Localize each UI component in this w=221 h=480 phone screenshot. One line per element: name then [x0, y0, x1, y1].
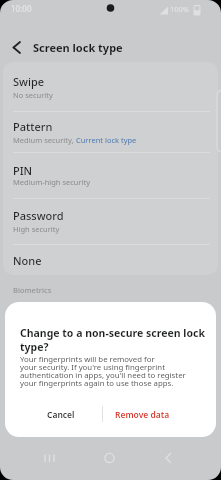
button[interactable]: Cancel: [27, 401, 94, 429]
button[interactable]: [3, 245, 218, 275]
staticText: No security: [13, 90, 53, 100]
button[interactable]: [156, 448, 184, 472]
button[interactable]: [6, 38, 26, 58]
staticText: Medium security,: [13, 135, 76, 145]
staticText: Cancel: [47, 409, 75, 421]
button[interactable]: [96, 448, 124, 472]
button[interactable]: [34, 448, 62, 472]
staticText: Swipe: [13, 74, 45, 89]
staticText: Your fingerprints will be removed for yo…: [20, 354, 186, 389]
staticText: 100%: [170, 4, 190, 14]
staticText: Current lock type: [76, 135, 137, 145]
staticText: 10:00: [11, 3, 32, 14]
staticText: PIN: [13, 163, 33, 178]
staticText: None: [13, 253, 42, 268]
button[interactable]: [3, 199, 218, 244]
button[interactable]: [3, 64, 218, 111]
staticText: Password: [13, 208, 64, 223]
staticText: Change to a non-secure screen lock type?: [20, 326, 205, 354]
staticText: Biometrics: [13, 285, 52, 295]
button[interactable]: [3, 153, 218, 198]
staticText: Pattern: [13, 119, 53, 134]
button[interactable]: [3, 112, 218, 153]
staticText: Screen lock type: [33, 40, 123, 55]
staticText: Remove data: [115, 409, 170, 421]
staticText: High security: [13, 224, 60, 234]
staticText: Medium-high security: [13, 177, 91, 187]
button[interactable]: Remove data: [105, 401, 180, 429]
